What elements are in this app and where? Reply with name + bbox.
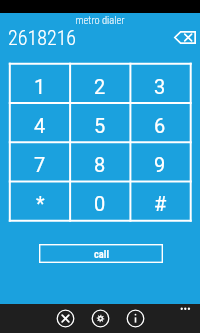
button[interactable]: 3: [130, 64, 190, 103]
staticText: call: [94, 248, 109, 260]
button[interactable]: 7: [10, 142, 70, 181]
button[interactable]: 4: [10, 103, 70, 142]
staticText: 2618216: [8, 26, 77, 49]
staticText: #: [154, 192, 167, 215]
staticText: 0: [94, 192, 106, 215]
button[interactable]: #: [130, 181, 190, 220]
staticText: 1: [34, 75, 46, 98]
staticText: 8: [94, 153, 106, 176]
button[interactable]: Backspace: [170, 26, 200, 48]
button[interactable]: call: [39, 244, 163, 263]
button[interactable]: 0: [70, 181, 130, 220]
button[interactable]: 9: [130, 142, 190, 181]
button[interactable]: *: [10, 181, 70, 220]
staticText: 6: [154, 114, 166, 137]
button[interactable]: 5: [70, 103, 130, 142]
button[interactable]: Settings: [91, 309, 110, 328]
staticText: 4: [34, 114, 46, 137]
staticText: 2: [94, 75, 106, 98]
staticText: *: [36, 192, 45, 215]
button[interactable]: 6: [130, 103, 190, 142]
button[interactable]: More options: [172, 304, 196, 315]
button[interactable]: Info: [126, 309, 145, 328]
button[interactable]: Close: [56, 309, 75, 328]
button[interactable]: 8: [70, 142, 130, 181]
staticText: 9: [154, 153, 166, 176]
staticText: metro dialer: [0, 14, 200, 26]
staticText: 5: [94, 114, 106, 137]
staticText: 3: [154, 75, 166, 98]
button[interactable]: 2: [70, 64, 130, 103]
button[interactable]: 1: [10, 64, 70, 103]
staticText: 7: [34, 153, 46, 176]
